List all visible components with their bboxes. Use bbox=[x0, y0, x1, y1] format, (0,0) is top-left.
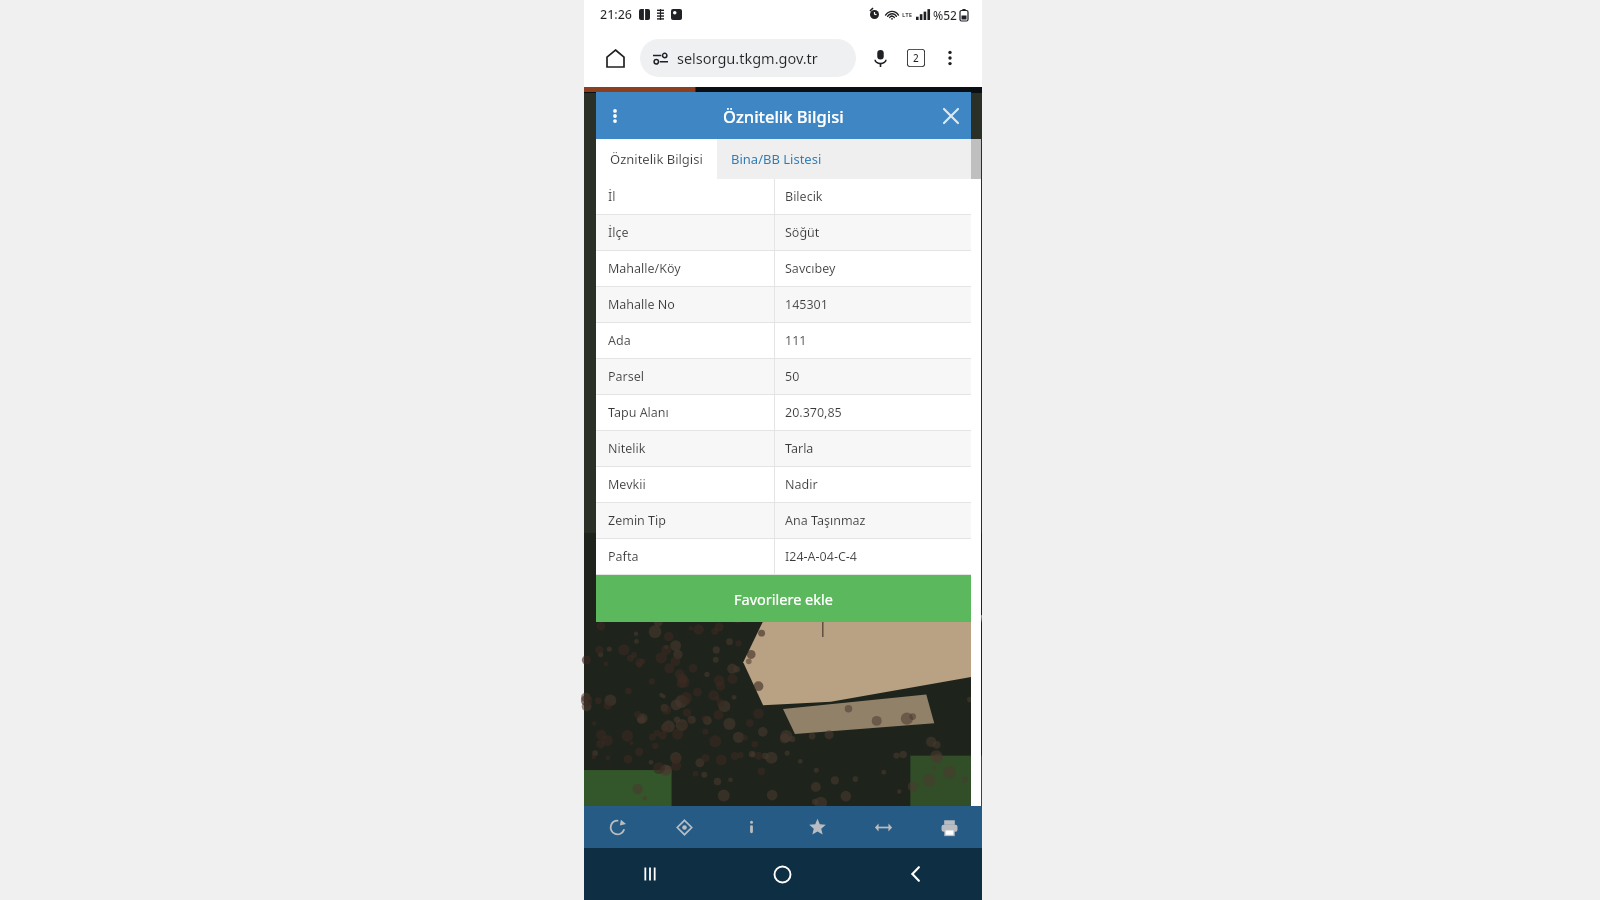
staticText: Ana Taşınmaz bbox=[785, 512, 866, 529]
staticText: 111 bbox=[785, 332, 807, 349]
button[interactable]: Favorilere ekle bbox=[596, 575, 971, 622]
button[interactable]: Mahalle/Köy bbox=[596, 251, 971, 286]
staticText: 145301 bbox=[785, 296, 828, 313]
button[interactable]: Back bbox=[849, 848, 982, 900]
staticText: Öznitelik Bilgisi bbox=[610, 150, 703, 168]
staticText: Savcıbey bbox=[785, 260, 836, 277]
staticText: İlçe bbox=[608, 224, 629, 241]
staticText: 21:26 bbox=[600, 6, 633, 23]
staticText: Ada bbox=[608, 332, 631, 349]
button[interactable]: Pafta bbox=[596, 539, 971, 574]
staticText: Mahalle No bbox=[608, 296, 675, 313]
staticText: Zemin Tip bbox=[608, 512, 666, 529]
staticText: selsorgu.tkgm.gov.tr bbox=[677, 48, 818, 68]
button[interactable]: Info bbox=[718, 806, 784, 848]
button[interactable]: Zemin Tip bbox=[596, 503, 971, 538]
staticText: Tarla bbox=[785, 440, 814, 457]
button[interactable]: Voice search bbox=[864, 42, 896, 74]
staticText: Nitelik bbox=[608, 440, 646, 457]
staticText: Bilecik bbox=[785, 188, 823, 205]
staticText: 20.370,85 bbox=[785, 404, 842, 421]
button[interactable]: Recent apps bbox=[584, 848, 716, 900]
staticText: Favorilere ekle bbox=[734, 589, 833, 609]
button[interactable]: Close bbox=[931, 96, 971, 136]
button[interactable]: İlçe bbox=[596, 215, 971, 250]
staticText: %52 bbox=[933, 7, 957, 23]
button[interactable]: Locate bbox=[651, 806, 718, 848]
button[interactable]: Ada bbox=[596, 323, 971, 358]
staticText: Söğüt bbox=[785, 224, 820, 241]
button[interactable]: Menu bbox=[596, 97, 634, 135]
staticText: Parsel bbox=[608, 368, 645, 385]
staticText: I24-A-04-C-4 bbox=[785, 548, 857, 565]
button[interactable]: Favorites bbox=[784, 806, 850, 848]
staticText: İl bbox=[608, 188, 616, 205]
staticText: 50 bbox=[785, 368, 800, 385]
button[interactable]: İl bbox=[596, 179, 971, 214]
button[interactable]: selsorgu.tkgm.gov.tr bbox=[640, 39, 856, 77]
button[interactable]: Nitelik bbox=[596, 431, 971, 466]
button[interactable]: Home bbox=[716, 848, 849, 900]
staticText: LTE bbox=[902, 11, 913, 19]
staticText: Mahalle/Köy bbox=[608, 260, 681, 277]
button[interactable]: Measure bbox=[850, 806, 916, 848]
button[interactable]: Tabs bbox=[900, 42, 932, 74]
staticText: 2 bbox=[913, 51, 919, 65]
button[interactable]: Bina/BB Listesi bbox=[717, 139, 836, 179]
button[interactable]: More options bbox=[934, 42, 966, 74]
staticText: Bina/BB Listesi bbox=[731, 150, 822, 168]
button[interactable]: Print bbox=[916, 806, 982, 848]
button[interactable]: Tapu Alanı bbox=[596, 395, 971, 430]
button[interactable]: Parsel bbox=[596, 359, 971, 394]
button[interactable]: Refresh bbox=[584, 806, 651, 848]
staticText: Pafta bbox=[608, 548, 639, 565]
staticText: Tapu Alanı bbox=[608, 404, 669, 421]
button[interactable]: Öznitelik Bilgisi bbox=[596, 139, 717, 179]
button[interactable]: Mevkii bbox=[596, 467, 971, 502]
staticText: Mevkii bbox=[608, 476, 646, 493]
button[interactable]: Home bbox=[600, 43, 630, 73]
button[interactable]: Mahalle No bbox=[596, 287, 971, 322]
staticText: Nadir bbox=[785, 476, 818, 493]
staticText: Öznitelik Bilgisi bbox=[723, 105, 844, 127]
